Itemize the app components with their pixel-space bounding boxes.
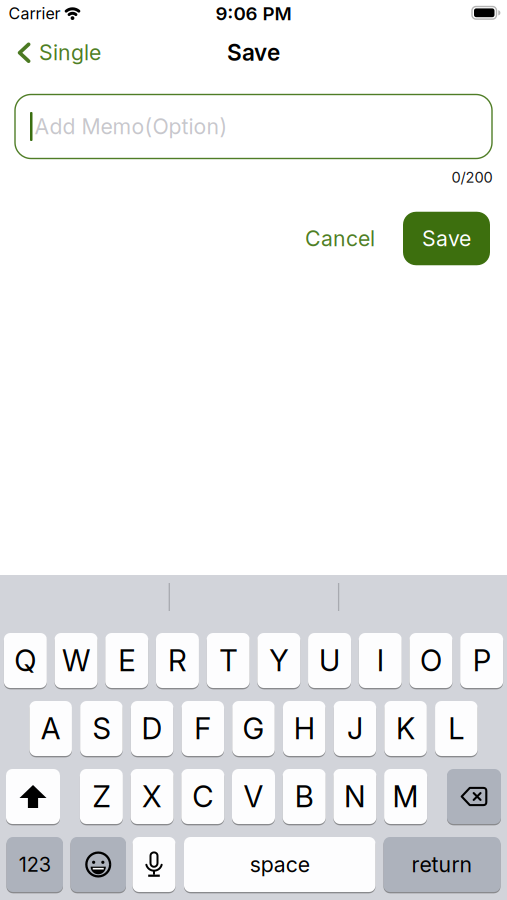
staticText: H bbox=[294, 711, 315, 746]
staticText: space bbox=[250, 852, 310, 877]
staticText: Y bbox=[269, 643, 288, 678]
button[interactable]: Q bbox=[4, 633, 47, 688]
button[interactable]: C bbox=[181, 769, 224, 824]
button[interactable]: space bbox=[184, 837, 375, 892]
button[interactable]: Delete bbox=[447, 769, 501, 824]
button[interactable]: M bbox=[384, 769, 427, 824]
staticText: Single bbox=[39, 40, 101, 65]
staticText: P bbox=[473, 643, 491, 678]
button[interactable]: B bbox=[283, 769, 326, 824]
staticText: L bbox=[448, 711, 464, 746]
button[interactable]: return bbox=[383, 837, 500, 892]
button[interactable]: E bbox=[105, 633, 148, 688]
staticText: C bbox=[192, 779, 213, 814]
button[interactable]: Y bbox=[257, 633, 300, 688]
button[interactable]: Shift bbox=[6, 769, 60, 824]
button[interactable]: Single bbox=[17, 40, 101, 65]
button[interactable]: R bbox=[156, 633, 199, 688]
staticText: S bbox=[92, 711, 110, 746]
staticText: V bbox=[243, 779, 263, 814]
button[interactable]: Save bbox=[403, 212, 490, 265]
staticText: Save bbox=[422, 226, 471, 251]
staticText: R bbox=[168, 643, 187, 678]
staticText: K bbox=[396, 711, 415, 746]
staticText: Q bbox=[14, 643, 36, 678]
staticText: Cancel bbox=[305, 226, 375, 251]
staticText: Add Memo(Option) bbox=[34, 114, 227, 139]
button[interactable]: S bbox=[80, 701, 123, 756]
staticText: return bbox=[411, 852, 472, 877]
button[interactable]: F bbox=[182, 701, 224, 756]
button[interactable]: D bbox=[131, 701, 173, 756]
button[interactable]: X bbox=[131, 769, 174, 824]
button[interactable]: Emoji bbox=[70, 837, 126, 892]
staticText: X bbox=[142, 779, 162, 814]
button[interactable]: Add Memo bbox=[15, 94, 492, 158]
button[interactable]: I bbox=[359, 633, 402, 688]
staticText: Z bbox=[92, 779, 110, 814]
staticText: O bbox=[420, 643, 442, 678]
staticText: 123 bbox=[19, 853, 51, 876]
button[interactable]: O bbox=[409, 633, 452, 688]
staticText: U bbox=[319, 643, 340, 678]
button[interactable]: Cancel bbox=[299, 216, 381, 261]
staticText: I bbox=[377, 643, 384, 678]
button[interactable]: Dictate bbox=[132, 837, 175, 892]
button[interactable]: N bbox=[333, 769, 376, 824]
button[interactable]: K bbox=[384, 701, 427, 756]
button[interactable]: T bbox=[207, 633, 250, 688]
button[interactable]: 123 bbox=[6, 837, 63, 892]
staticText: B bbox=[295, 779, 314, 814]
staticText: M bbox=[393, 779, 419, 814]
staticText: 0/200 bbox=[451, 169, 492, 186]
staticText: Carrier bbox=[8, 4, 60, 23]
button[interactable]: U bbox=[308, 633, 351, 688]
staticText: 9:06 PM bbox=[215, 2, 291, 24]
button[interactable]: Z bbox=[80, 769, 123, 824]
staticText: D bbox=[142, 711, 163, 746]
staticText: N bbox=[344, 779, 366, 814]
button[interactable]: J bbox=[334, 701, 376, 756]
staticText: J bbox=[347, 711, 363, 746]
staticText: F bbox=[194, 711, 211, 746]
button[interactable]: G bbox=[232, 701, 275, 756]
button[interactable]: L bbox=[435, 701, 478, 756]
staticText: E bbox=[118, 643, 135, 678]
staticText: T bbox=[219, 643, 237, 678]
staticText: G bbox=[242, 711, 264, 746]
staticText: W bbox=[62, 643, 90, 678]
staticText: A bbox=[41, 711, 61, 746]
button[interactable]: P bbox=[460, 633, 503, 688]
staticText: Save bbox=[227, 39, 280, 66]
button[interactable]: W bbox=[54, 633, 97, 688]
button[interactable]: A bbox=[29, 701, 72, 756]
button[interactable]: H bbox=[283, 701, 325, 756]
button[interactable]: V bbox=[232, 769, 275, 824]
